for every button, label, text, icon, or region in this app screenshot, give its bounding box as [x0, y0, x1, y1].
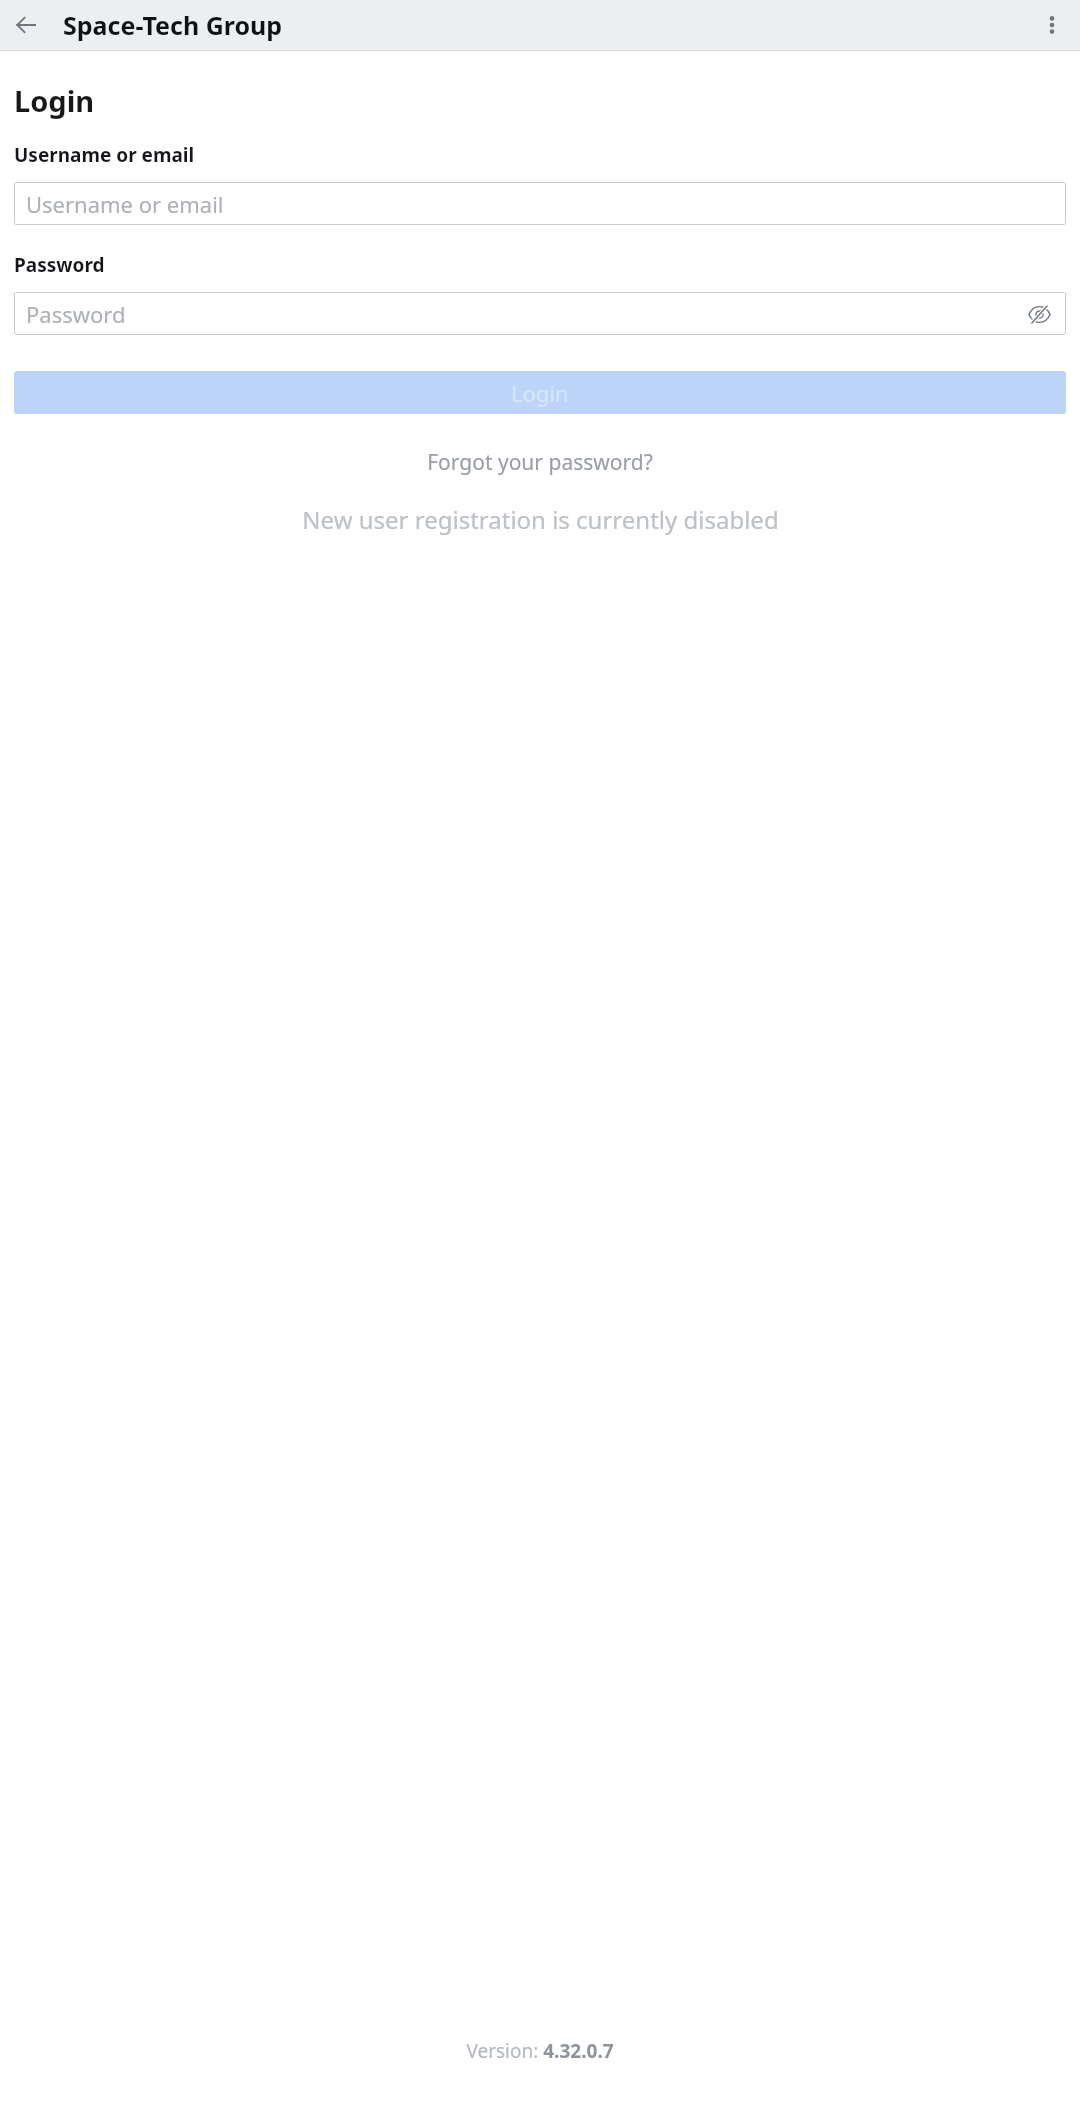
- button[interactable]: Show password: [1022, 297, 1056, 331]
- staticText: Space-Tech Group: [63, 8, 283, 42]
- staticText: Password: [14, 252, 105, 278]
- button[interactable]: Username or email: [14, 182, 1066, 225]
- button[interactable]: Forgot your password?: [0, 440, 1080, 485]
- staticText: Login: [511, 378, 569, 408]
- staticText: Password: [26, 299, 126, 329]
- button[interactable]: Password: [14, 292, 1066, 335]
- staticText: Username or email: [14, 142, 195, 168]
- button[interactable]: More options: [1030, 3, 1074, 47]
- staticText: Username or email: [26, 189, 224, 219]
- staticText: New user registration is currently disab…: [302, 503, 779, 536]
- button[interactable]: Back: [4, 3, 48, 47]
- staticText: Version: 4.32.0.7: [466, 2038, 614, 2064]
- staticText: Forgot your password?: [427, 448, 653, 477]
- staticText: Login: [14, 81, 95, 120]
